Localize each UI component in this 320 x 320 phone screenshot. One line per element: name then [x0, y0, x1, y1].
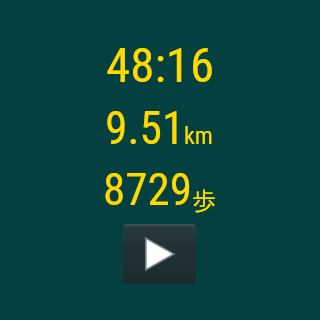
staticText: 歩	[192, 182, 216, 217]
staticText: 8729	[103, 163, 192, 216]
staticText: 9.51	[105, 102, 185, 155]
staticText: km	[184, 122, 213, 150]
button[interactable]: Start workout	[123, 224, 196, 284]
staticText: 48:16	[106, 37, 215, 94]
